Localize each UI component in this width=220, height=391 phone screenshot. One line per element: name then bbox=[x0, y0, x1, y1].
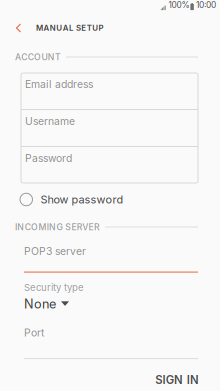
staticText: Security type bbox=[24, 282, 84, 293]
staticText: Port bbox=[24, 326, 44, 339]
staticText: Password bbox=[25, 152, 72, 165]
button[interactable]: Back bbox=[1, 16, 36, 40]
staticText: None bbox=[24, 296, 56, 311]
staticText: INCOMING SERVER bbox=[15, 222, 100, 232]
staticText: 100% bbox=[168, 0, 189, 10]
staticText: Show password bbox=[40, 193, 123, 206]
staticText: Username bbox=[25, 115, 75, 128]
staticText: SIGN IN bbox=[155, 373, 199, 387]
button[interactable]: SIGN IN bbox=[145, 367, 209, 391]
staticText: POP3 server bbox=[24, 245, 86, 258]
staticText: Email address bbox=[25, 78, 93, 91]
staticText: ACCOUNT bbox=[15, 52, 61, 62]
staticText: 10:00 bbox=[196, 0, 216, 10]
button[interactable]: None bbox=[24, 296, 198, 311]
button[interactable]: Show password bbox=[0, 183, 220, 216]
staticText: MANUAL SETUP bbox=[36, 23, 104, 33]
